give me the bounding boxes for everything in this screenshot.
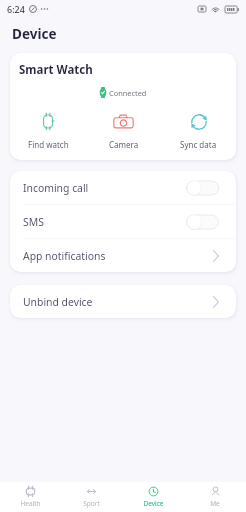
- button[interactable]: Sport: [61, 483, 122, 511]
- button[interactable]: Camera: [86, 112, 161, 151]
- staticText: Me: [210, 499, 220, 508]
- staticText: Find watch: [28, 139, 69, 150]
- staticText: 6:24: [7, 3, 25, 15]
- staticText: Sport: [83, 499, 100, 508]
- button[interactable]: Me: [184, 483, 246, 511]
- staticText: Incoming call: [23, 181, 89, 195]
- staticText: App notifications: [23, 249, 106, 263]
- staticText: Smart Watch: [19, 62, 93, 78]
- staticText: Camera: [109, 139, 139, 150]
- staticText: Connected: [109, 88, 147, 98]
- staticText: Unbind device: [23, 295, 93, 309]
- button[interactable]: App notifications: [10, 239, 236, 272]
- button[interactable]: SMS: [10, 205, 236, 238]
- staticText: Sync data: [180, 139, 217, 150]
- button[interactable]: Incoming call: [10, 171, 236, 204]
- button[interactable]: Unbind device: [10, 285, 236, 318]
- staticText: Health: [20, 499, 41, 508]
- staticText: SMS: [23, 215, 44, 229]
- staticText: Device: [143, 499, 164, 508]
- button[interactable]: Sync data: [161, 112, 236, 151]
- button[interactable]: Device: [122, 483, 184, 511]
- button[interactable]: Health: [0, 483, 61, 511]
- button[interactable]: Find watch: [10, 112, 86, 151]
- staticText: Device: [12, 25, 57, 43]
